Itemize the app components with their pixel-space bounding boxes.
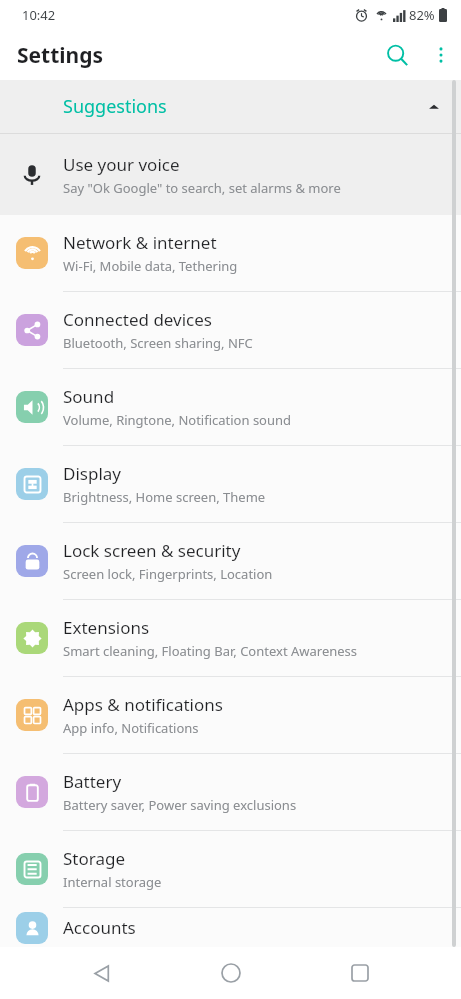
button[interactable]: Battery [0,754,461,830]
staticText: Storage [63,847,126,870]
staticText: Say "Ok Google" to search, set alarms & … [63,179,341,197]
staticText: Display [63,462,121,485]
button[interactable]: Connected devices [0,292,461,368]
staticText: Smart cleaning, Floating Bar, Context Aw… [63,642,358,660]
button[interactable]: Sound [0,369,461,445]
staticText: Sound [63,385,115,408]
staticText: Use your voice [63,153,180,176]
button[interactable]: Apps & notifications [0,677,461,753]
button[interactable]: Search [373,31,421,79]
staticText: Settings [17,41,104,70]
button[interactable]: Use your voice [0,134,461,215]
staticText: Internal storage [63,873,162,891]
button[interactable]: Accounts [0,908,461,947]
button[interactable]: Storage [0,831,461,907]
staticText: Battery [63,770,122,793]
staticText: Wi-Fi, Mobile data, Tethering [63,257,238,275]
staticText: 82% [409,6,435,24]
staticText: Screen lock, Fingerprints, Location [63,565,273,583]
button[interactable]: More options [421,35,461,75]
button[interactable]: Network & internet [0,215,461,291]
staticText: Accounts [63,916,136,939]
staticText: Suggestions [63,94,167,119]
button[interactable]: Display [0,446,461,522]
staticText: App info, Notifications [63,719,199,737]
button[interactable]: Lock screen & security [0,523,461,599]
staticText: Apps & notifications [63,693,223,716]
button[interactable]: Extensions [0,600,461,676]
staticText: Bluetooth, Screen sharing, NFC [63,334,253,352]
button[interactable]: Home [203,947,259,999]
button[interactable]: Recents [332,947,388,999]
button[interactable]: Suggestions [0,80,461,133]
staticText: Connected devices [63,308,213,331]
staticText: Lock screen & security [63,539,241,562]
button[interactable]: Back [73,947,129,999]
staticText: Volume, Ringtone, Notification sound [63,411,292,429]
staticText: Extensions [63,616,150,639]
staticText: Battery saver, Power saving exclusions [63,796,297,814]
staticText: Network & internet [63,231,217,254]
staticText: 10:42 [22,6,56,24]
staticText: Brightness, Home screen, Theme [63,488,266,506]
